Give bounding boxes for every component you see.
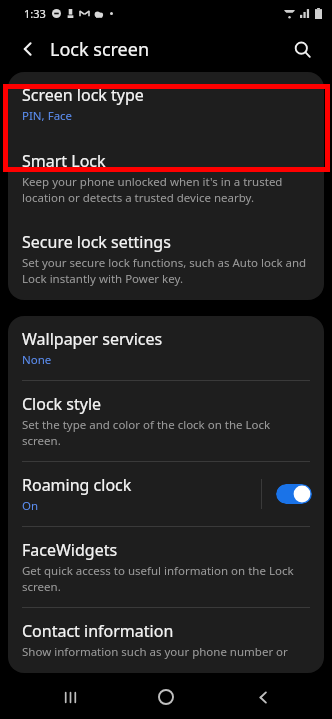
staticText: On: [22, 498, 39, 514]
staticText: Keep your phone unlocked when it's in a …: [22, 174, 310, 205]
staticText: Roaming clock: [22, 474, 132, 496]
staticText: Contact information: [22, 620, 174, 642]
button[interactable]: Back: [10, 31, 46, 67]
button[interactable]: Roaming clock toggle: [276, 484, 312, 504]
staticText: Lock screen: [50, 37, 150, 62]
button[interactable]: Home: [139, 675, 193, 719]
staticText: Show information such as your phone numb…: [22, 644, 288, 660]
staticText: FaceWidgets: [22, 539, 118, 561]
staticText: 1:33: [24, 6, 46, 21]
button[interactable]: Secure lock settings: [8, 219, 324, 300]
staticText: Smart Lock: [22, 150, 106, 172]
button[interactable]: Contact information: [8, 608, 324, 673]
button[interactable]: Search: [284, 31, 320, 67]
staticText: Set your secure lock functions, such as …: [22, 255, 310, 286]
staticText: Set the type and color of the clock on t…: [22, 417, 310, 448]
button[interactable]: Recent apps: [43, 675, 97, 719]
staticText: None: [22, 352, 52, 368]
button[interactable]: Roaming clock: [8, 462, 324, 526]
staticText: Clock style: [22, 393, 102, 415]
button[interactable]: Clock style: [8, 381, 324, 461]
staticText: PIN, Face: [22, 108, 73, 124]
button[interactable]: Screen lock type: [8, 72, 324, 136]
button[interactable]: Smart Lock: [8, 136, 324, 219]
staticText: Secure lock settings: [22, 231, 171, 253]
staticText: Screen lock type: [22, 84, 144, 106]
staticText: Get quick access to useful information o…: [22, 563, 310, 594]
staticText: Wallpaper services: [22, 328, 163, 350]
button[interactable]: Back: [236, 675, 290, 719]
button[interactable]: FaceWidgets: [8, 527, 324, 607]
button[interactable]: Wallpaper services: [8, 316, 324, 380]
